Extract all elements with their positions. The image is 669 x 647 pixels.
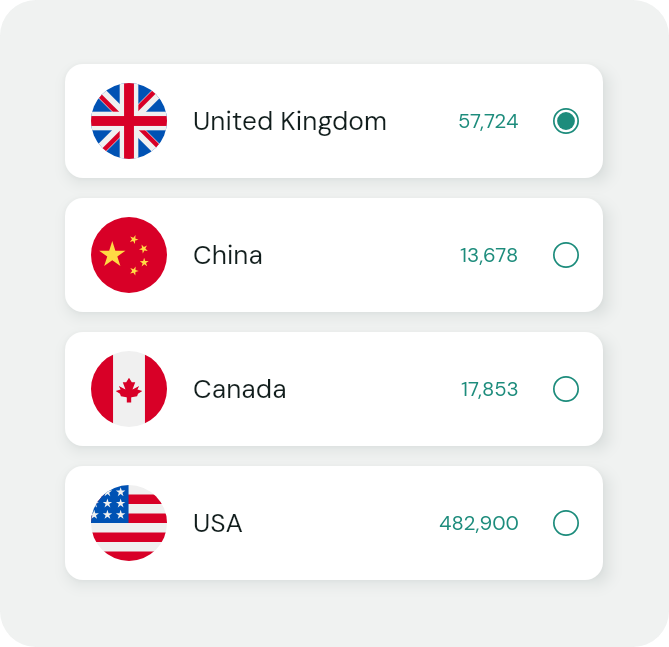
staticText: China — [193, 238, 263, 272]
other: Select USA — [553, 510, 579, 536]
button[interactable]: USA — [65, 466, 603, 580]
button[interactable]: United Kingdom — [65, 64, 603, 178]
staticText: 13,678 — [460, 242, 519, 269]
button[interactable]: Canada — [65, 332, 603, 446]
staticText: United Kingdom — [193, 104, 388, 138]
button[interactable]: China — [65, 198, 603, 312]
other: Select Canada — [553, 376, 579, 402]
staticText: Canada — [193, 372, 287, 406]
staticText: 57,724 — [458, 108, 519, 135]
staticText: 17,853 — [461, 376, 519, 403]
other: Select United Kingdom — [553, 108, 579, 134]
staticText: 482,900 — [439, 510, 519, 537]
other: Select China — [553, 242, 579, 268]
staticText: USA — [193, 506, 244, 540]
